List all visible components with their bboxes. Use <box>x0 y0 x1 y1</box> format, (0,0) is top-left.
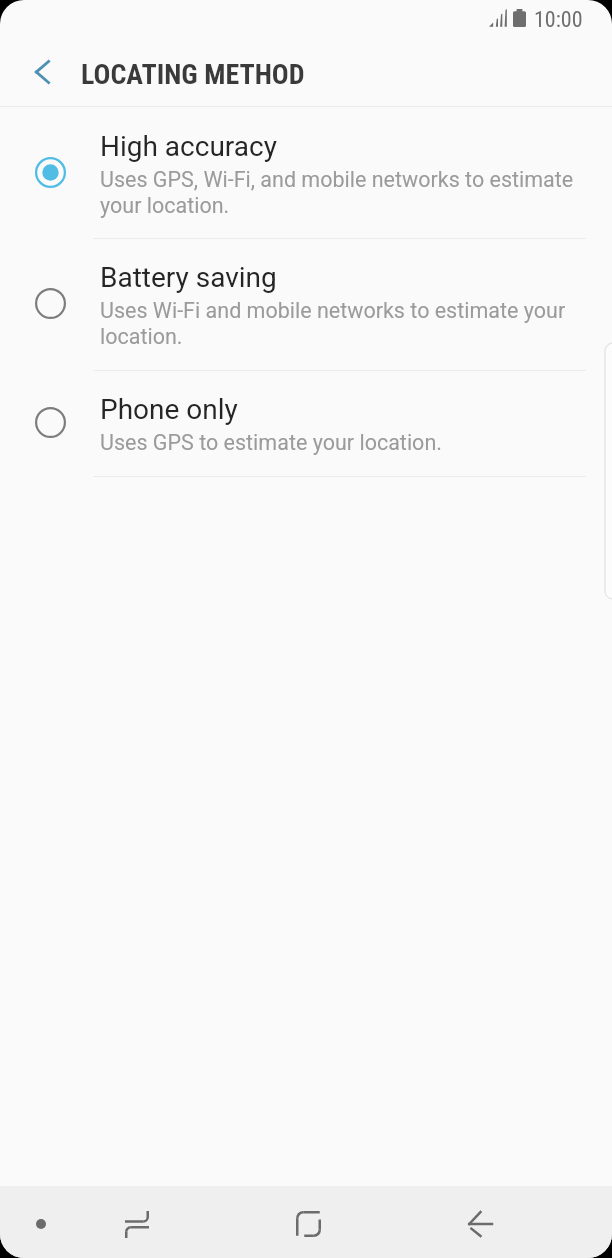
staticText: Uses GPS to estimate your location. <box>100 430 442 455</box>
staticText: LOCATING METHOD <box>81 58 305 91</box>
button[interactable]: Navigate up <box>12 42 72 102</box>
staticText: High accuracy <box>100 130 277 163</box>
button[interactable]: More options <box>11 1194 71 1254</box>
staticText: 10:00 <box>534 7 583 33</box>
button[interactable]: Battery saving <box>0 239 612 371</box>
button[interactable]: Phone only <box>0 371 612 477</box>
button[interactable]: High accuracy <box>0 107 612 239</box>
button[interactable]: Back <box>450 1194 510 1254</box>
staticText: Uses Wi-Fi and mobile networks to estima… <box>100 298 592 349</box>
button[interactable]: Recent apps <box>107 1194 167 1254</box>
staticText: Battery saving <box>100 261 277 294</box>
button[interactable]: Home <box>278 1194 338 1254</box>
staticText: Phone only <box>100 393 238 426</box>
staticText: Uses GPS, Wi-Fi, and mobile networks to … <box>100 167 592 218</box>
